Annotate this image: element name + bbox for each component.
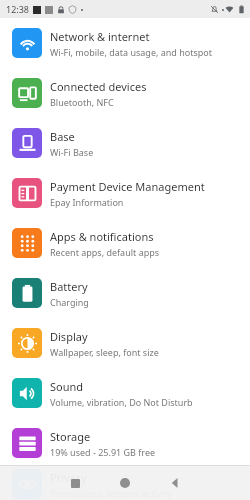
staticText: Network & internet — [50, 29, 150, 44]
staticText: Battery — [50, 279, 88, 294]
button[interactable]: Home — [100, 466, 150, 500]
staticText: Recent apps, default apps — [50, 246, 160, 258]
button[interactable]: Connected devices — [0, 68, 250, 118]
staticText: Wi-Fi, mobile, data usage, and hotspot — [50, 46, 212, 58]
staticText: Charging — [50, 296, 89, 308]
staticText: Storage — [50, 429, 91, 444]
button[interactable]: Network & internet — [0, 18, 250, 68]
staticText: Epay Information — [50, 196, 124, 208]
button[interactable]: Payment Device Management — [0, 168, 250, 218]
button[interactable]: Apps & notifications — [0, 218, 250, 268]
staticText: Wi-Fi Base — [50, 146, 94, 158]
staticText: Wallpaper, sleep, font size — [50, 346, 159, 358]
staticText: Apps & notifications — [50, 229, 154, 244]
staticText: Connected devices — [50, 79, 147, 94]
staticText: Privacy — [50, 470, 87, 485]
staticText: Display — [50, 329, 88, 344]
button[interactable]: Base — [0, 118, 250, 168]
staticText: 12:38 — [6, 3, 30, 15]
button[interactable]: Sound — [0, 368, 250, 418]
button[interactable]: Display — [0, 318, 250, 368]
button[interactable]: Back — [150, 466, 200, 500]
button[interactable]: Privacy — [0, 468, 250, 500]
staticText: Bluetooth, NFC — [50, 96, 114, 108]
staticText: Permissions, account activity — [50, 487, 172, 499]
button[interactable]: Storage — [0, 418, 250, 468]
button[interactable]: Battery — [0, 268, 250, 318]
staticText: Volume, vibration, Do Not Disturb — [50, 396, 193, 408]
staticText: 19% used - 25.91 GB free — [50, 446, 156, 458]
staticText: Payment Device Management — [50, 179, 205, 194]
button[interactable]: Recent apps — [50, 466, 100, 500]
staticText: Base — [50, 129, 75, 144]
staticText: Sound — [50, 379, 84, 394]
